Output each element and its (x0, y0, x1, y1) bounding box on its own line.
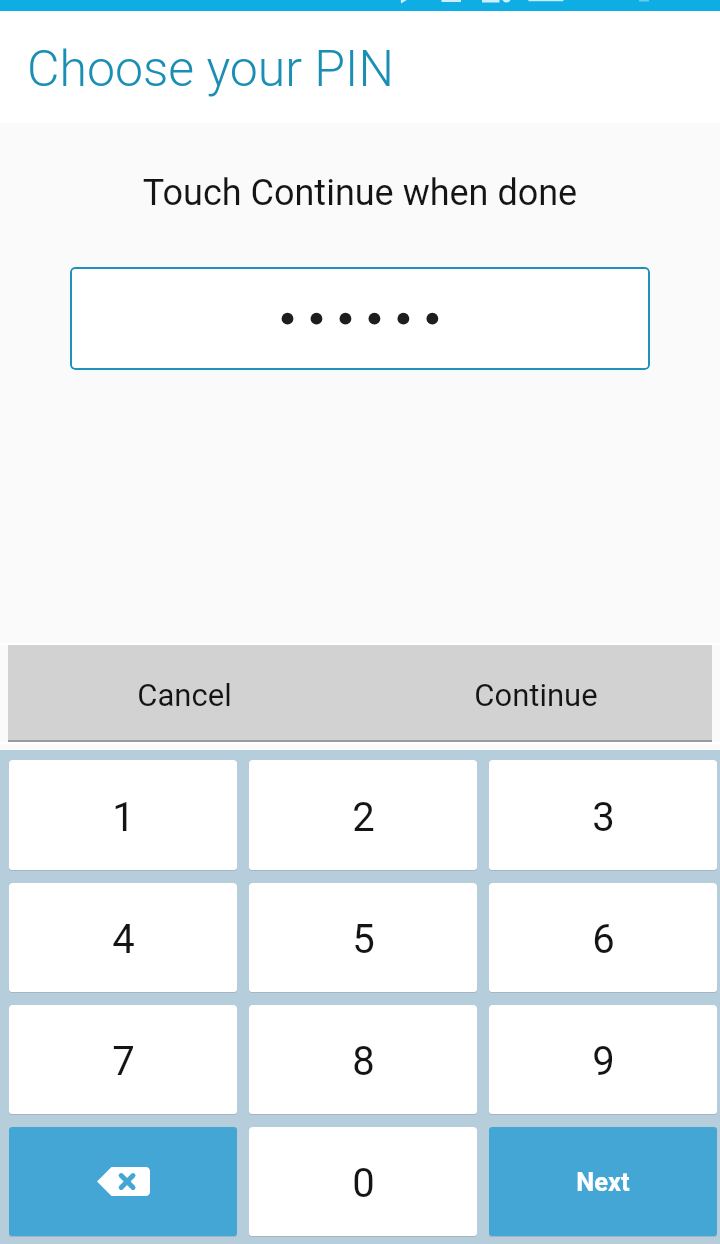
staticText: Touch Continue when done (0, 172, 720, 214)
button[interactable]: 3 (489, 760, 717, 870)
staticText: Continue (474, 677, 598, 713)
button[interactable]: 5 (249, 883, 477, 992)
staticText: 7 (112, 1038, 135, 1085)
button[interactable]: 7 (9, 1005, 237, 1114)
button[interactable]: Next (489, 1127, 717, 1236)
staticText: 2 (352, 794, 375, 841)
staticText: 6 (592, 916, 615, 963)
staticText: 0 (352, 1160, 375, 1207)
staticText: 5 (352, 916, 375, 963)
button[interactable]: Delete (9, 1127, 237, 1236)
button[interactable]: Continue (360, 645, 712, 742)
button[interactable]: 9 (489, 1005, 717, 1114)
button[interactable]: 8 (249, 1005, 477, 1114)
button[interactable] (70, 267, 650, 370)
button[interactable]: 1 (9, 760, 237, 870)
button[interactable]: Cancel (8, 645, 360, 742)
staticText: 4 (112, 916, 135, 963)
staticText: 3 (592, 794, 615, 841)
button[interactable]: 0 (249, 1127, 477, 1236)
staticText: Cancel (137, 677, 232, 713)
staticText: 9 (592, 1038, 615, 1085)
button[interactable]: 2 (249, 760, 477, 870)
staticText: Choose your PIN (27, 40, 394, 99)
staticText: 8 (352, 1038, 375, 1085)
staticText: Next (576, 1167, 630, 1197)
button[interactable]: 6 (489, 883, 717, 992)
staticText: 1 (112, 794, 135, 841)
button[interactable]: 4 (9, 883, 237, 992)
